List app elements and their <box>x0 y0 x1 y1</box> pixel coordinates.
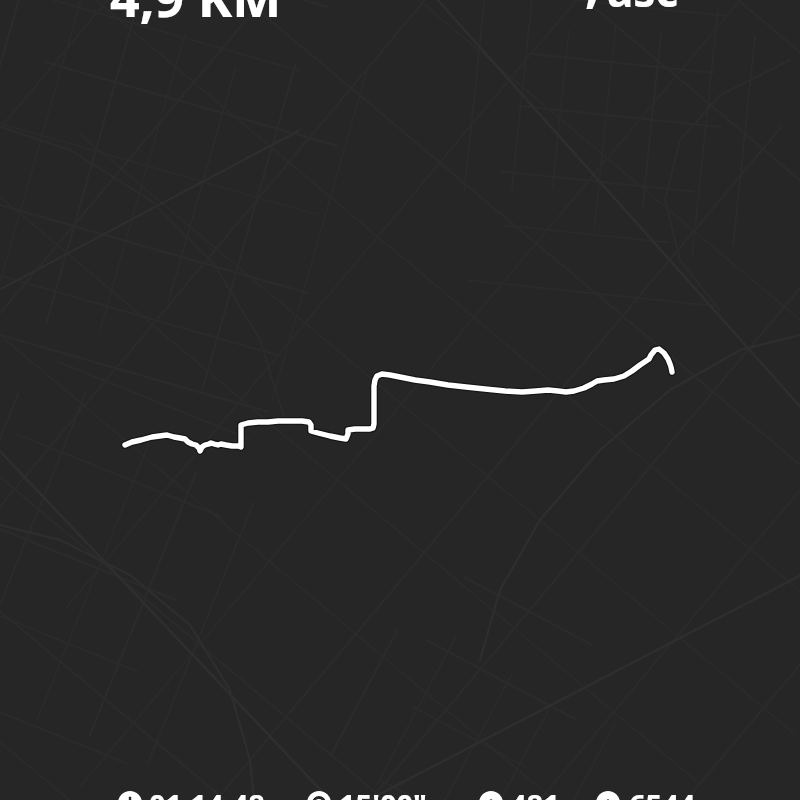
button[interactable]: Duration <box>118 791 142 800</box>
button[interactable]: 15'00" <box>339 785 427 800</box>
staticText: 15'00" <box>339 785 427 800</box>
button[interactable]: asc <box>607 0 679 20</box>
button[interactable]: Calories <box>479 791 503 800</box>
button[interactable]: Steps <box>596 791 620 800</box>
staticText: 4,9 KM <box>110 0 282 32</box>
staticText: , <box>585 0 600 17</box>
button[interactable]: , <box>585 0 600 17</box>
staticText: 01:14:48 <box>149 785 265 800</box>
button[interactable]: 481 <box>510 785 560 800</box>
button[interactable]: 6544 <box>629 785 696 800</box>
button[interactable]: Pace <box>307 791 331 800</box>
staticText: asc <box>607 0 679 20</box>
staticText: 481 <box>510 785 560 800</box>
button[interactable]: 4,9 KM <box>110 0 282 32</box>
staticText: 6544 <box>629 785 696 800</box>
button[interactable]: 01:14:48 <box>149 785 265 800</box>
